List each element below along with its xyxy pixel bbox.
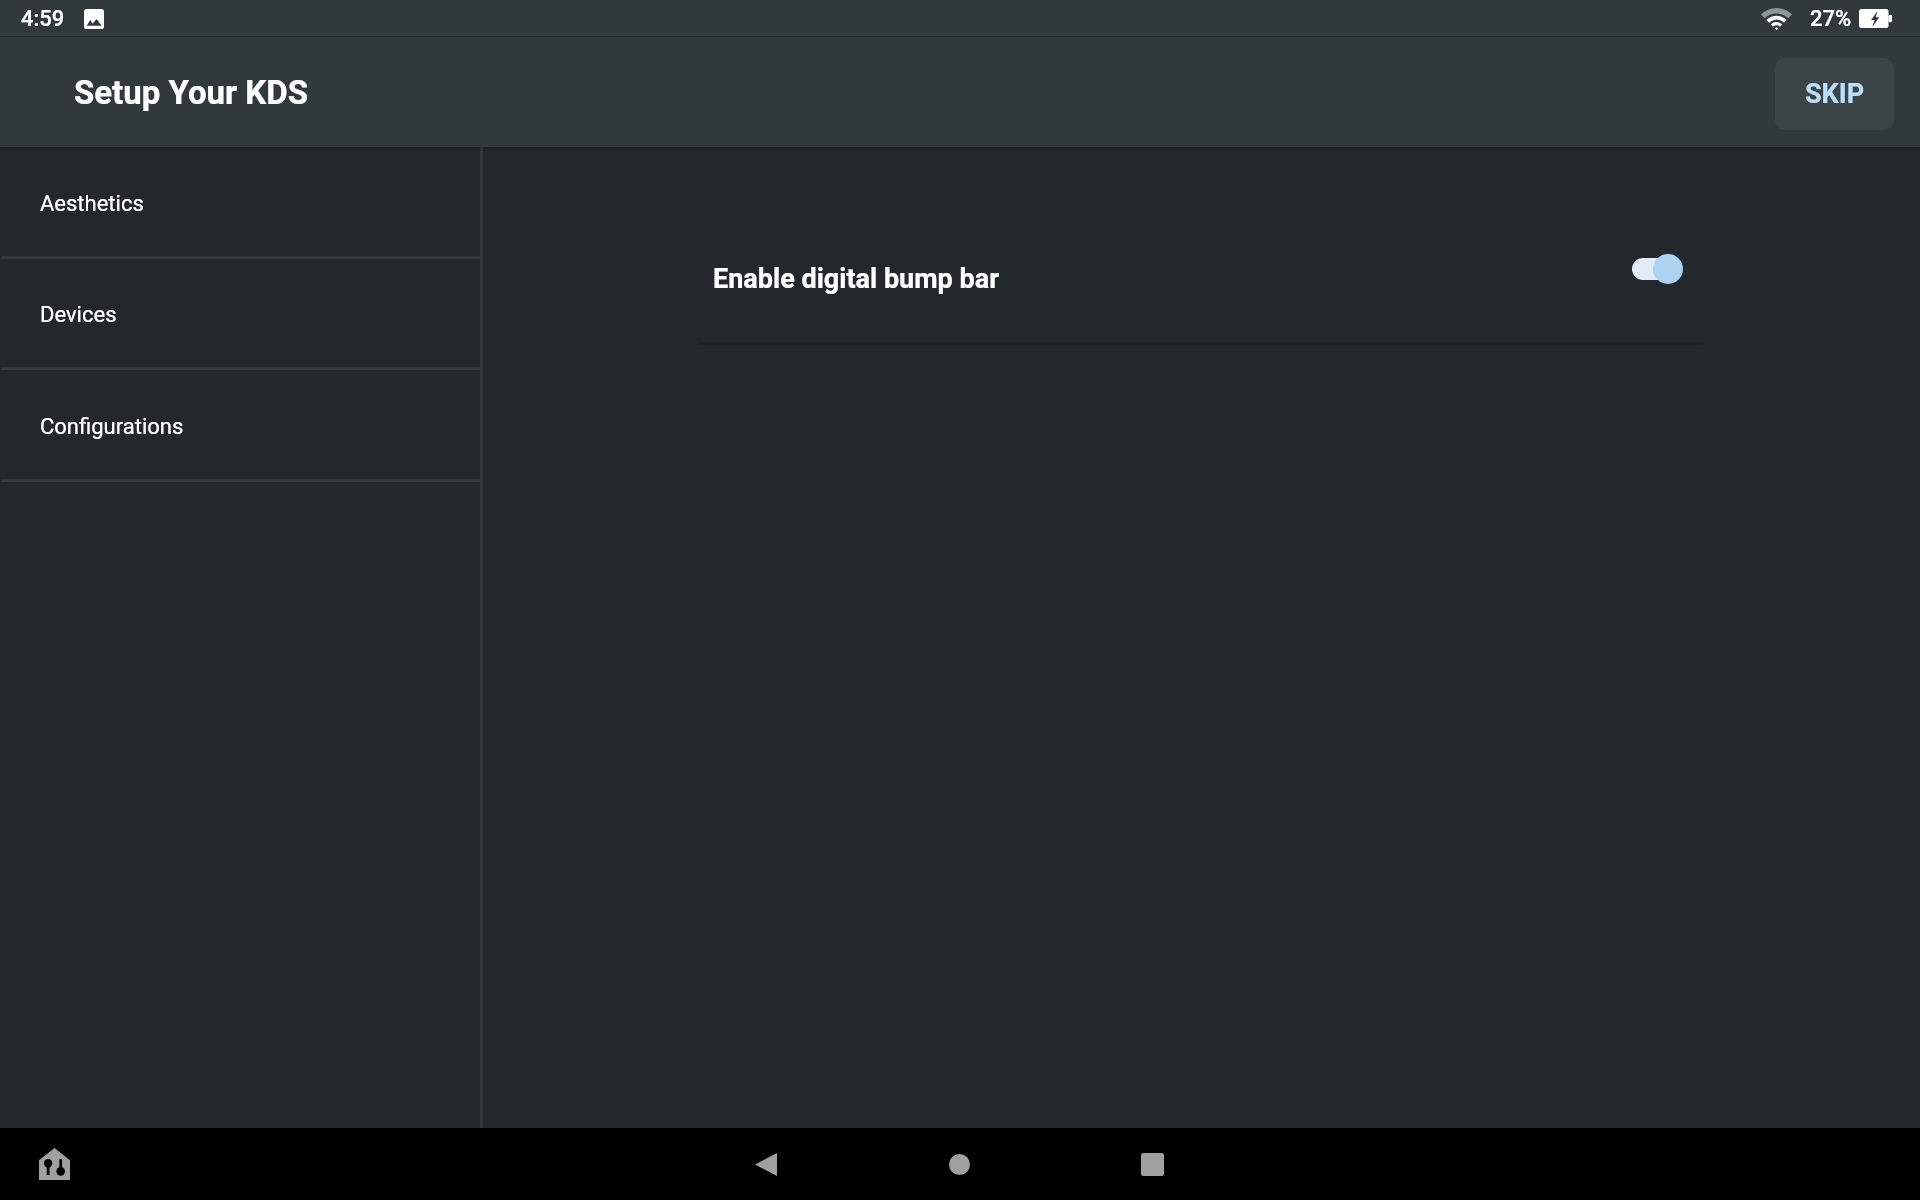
staticText: Configurations [40, 414, 184, 440]
button[interactable]: Recents [1124, 1136, 1180, 1192]
staticText: SKIP [1805, 78, 1865, 110]
staticText: Devices [40, 302, 117, 328]
button[interactable]: Devices [0, 259, 480, 370]
button[interactable]: Back [738, 1136, 794, 1192]
button[interactable]: Aesthetics [0, 147, 480, 259]
staticText: 4:59 [21, 6, 65, 32]
staticText: Setup Your KDS [74, 73, 309, 112]
button[interactable]: SKIP [1775, 58, 1894, 130]
button[interactable]: Enable digital bump bar [713, 237, 1683, 301]
button[interactable]: Home settings [33, 1143, 75, 1185]
button[interactable]: Configurations [0, 370, 480, 482]
button[interactable]: Home [931, 1136, 987, 1192]
staticText: Enable digital bump bar [713, 263, 1000, 295]
staticText: Aesthetics [40, 191, 144, 217]
staticText: 27% [1810, 6, 1852, 32]
